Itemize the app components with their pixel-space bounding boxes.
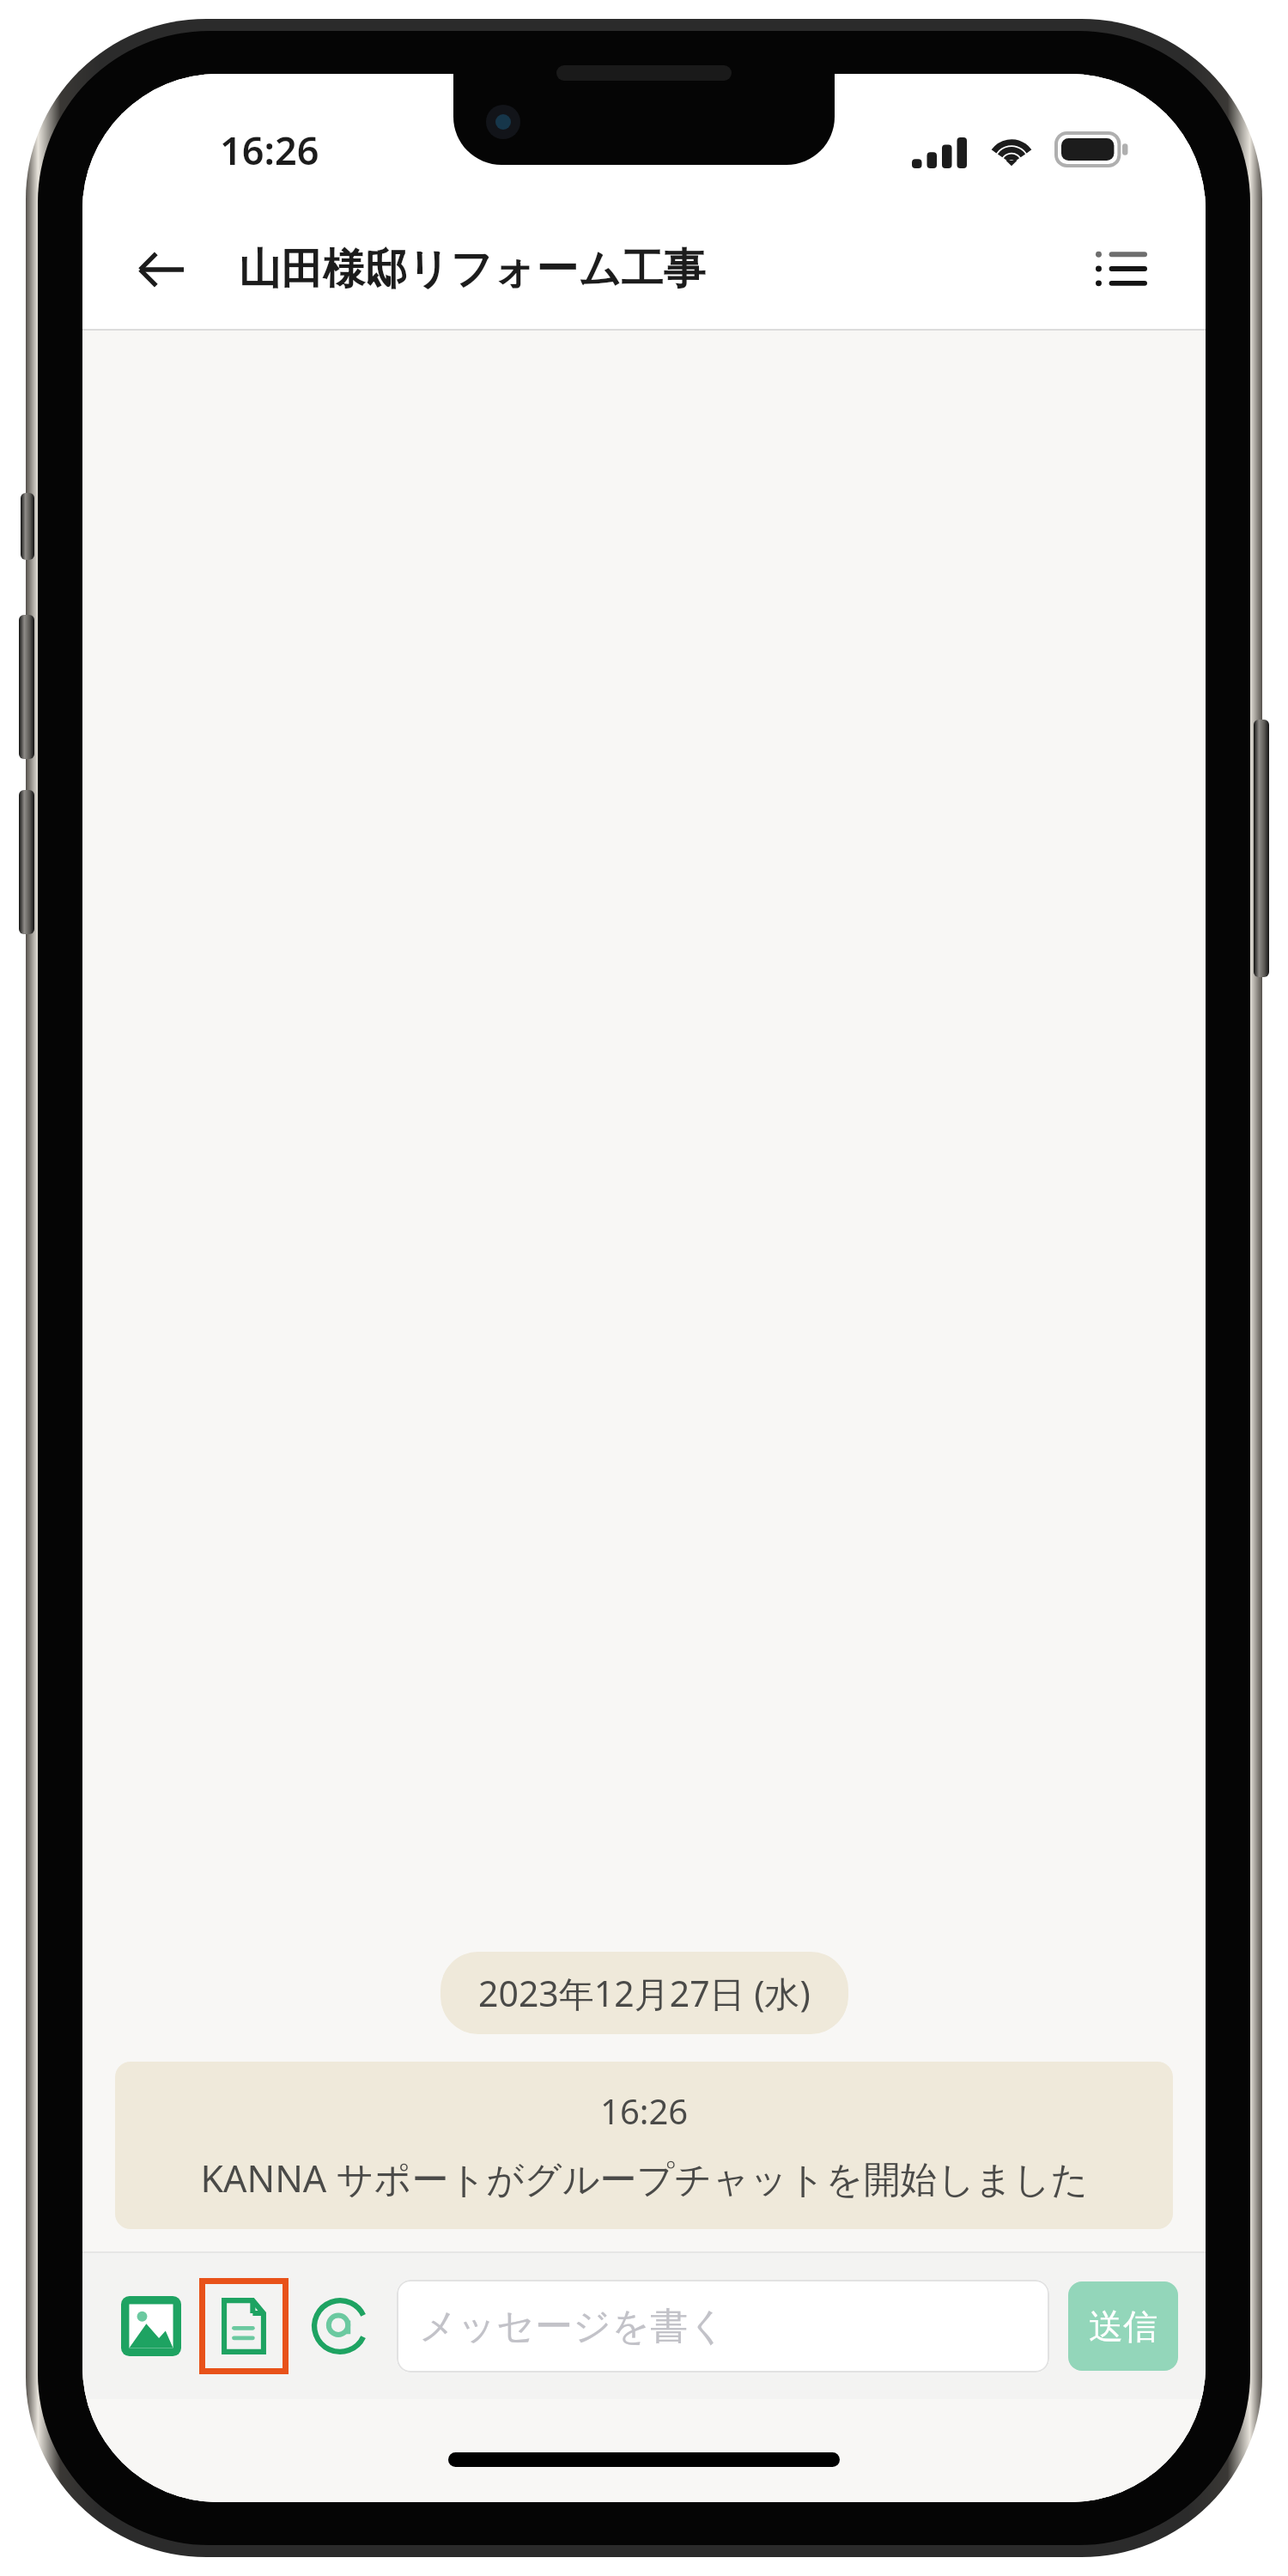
- button[interactable]: メッセージを書く: [397, 2280, 1049, 2372]
- button[interactable]: Attach photo: [110, 2285, 192, 2367]
- staticText: 16:26: [220, 124, 319, 176]
- button[interactable]: Attach document: [199, 2278, 289, 2374]
- button[interactable]: 16:26: [115, 2062, 1173, 2229]
- staticText: 2023年12月27日 (水): [478, 1969, 811, 2017]
- button[interactable]: Back: [113, 222, 210, 318]
- button[interactable]: 2023年12月27日 (水): [440, 1952, 848, 2034]
- staticText: 送信: [1089, 2305, 1157, 2348]
- staticText: KANNA サポートがグループチャットを開始しました: [200, 2153, 1089, 2203]
- button[interactable]: Mention: [299, 2285, 381, 2367]
- button[interactable]: List: [1077, 225, 1166, 314]
- button[interactable]: 送信: [1068, 2281, 1178, 2371]
- staticText: 山田様邸リフォーム工事: [239, 243, 706, 296]
- staticText: メッセージを書く: [419, 2303, 727, 2350]
- staticText: 16:26: [600, 2087, 689, 2134]
